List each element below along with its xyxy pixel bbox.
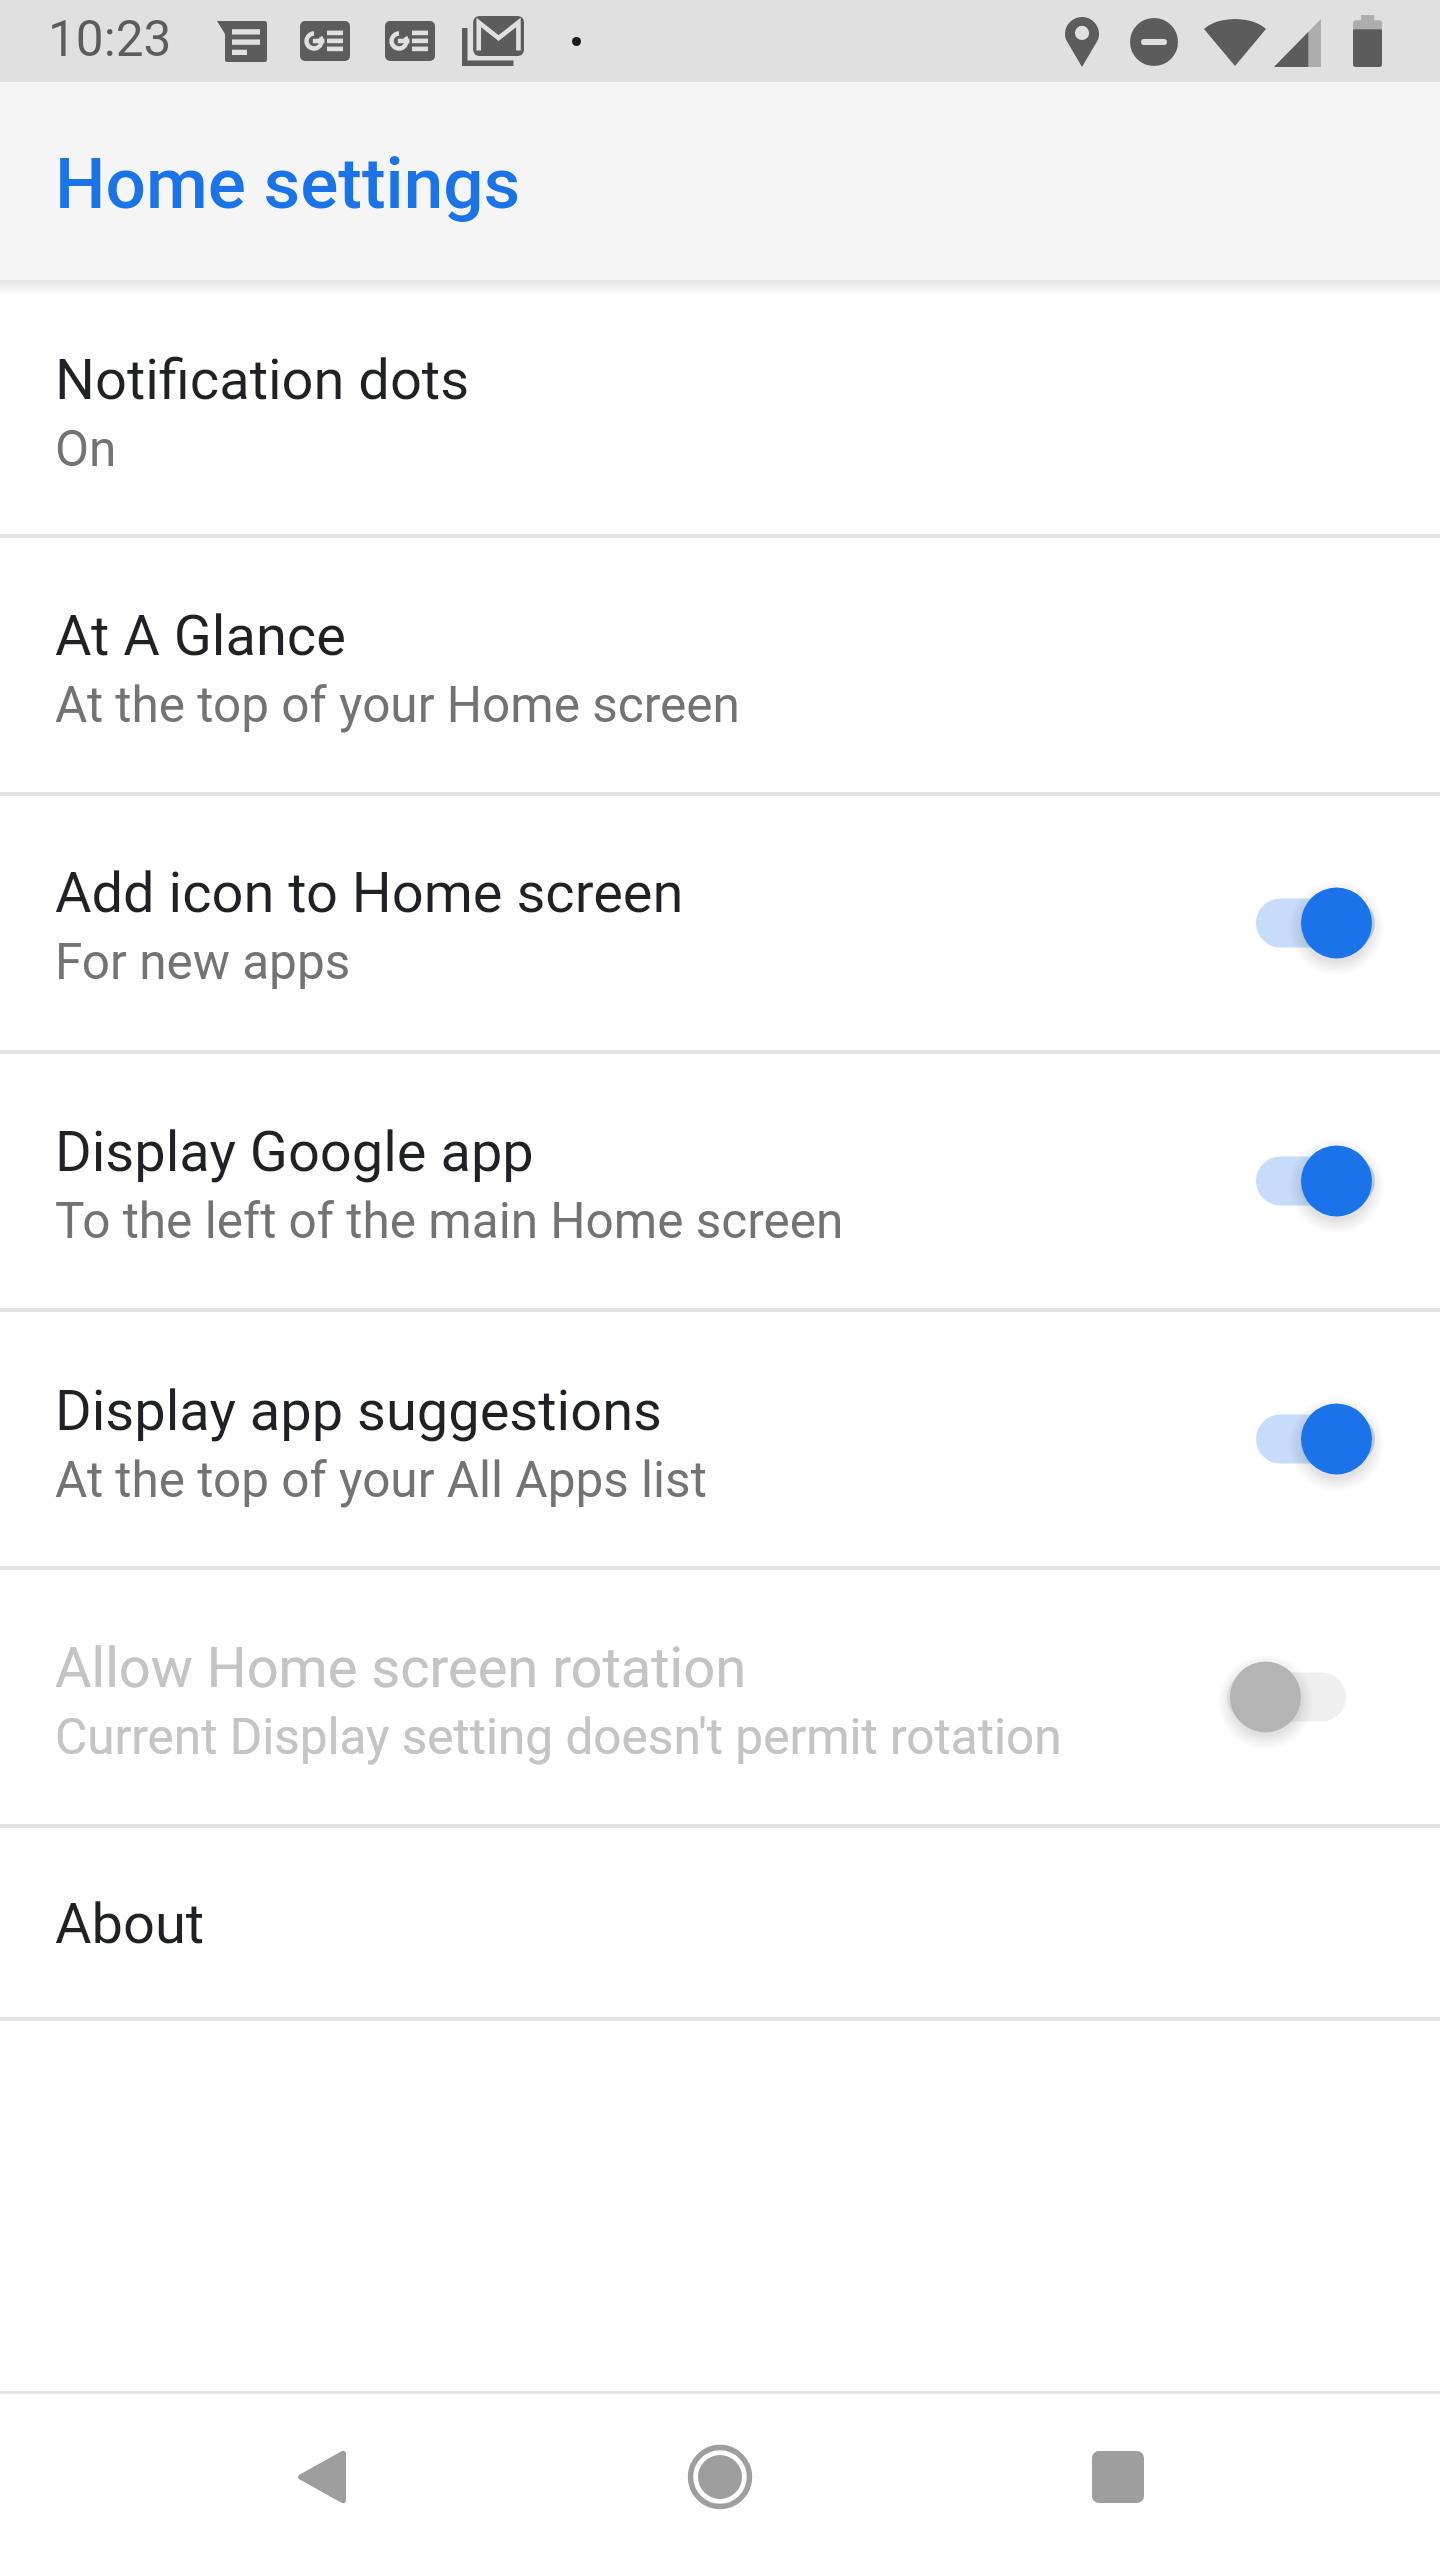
button[interactable]: Switch on [1256,1399,1375,1479]
staticText: Display app suggestions [55,1378,662,1444]
button[interactable]: Switch on [1256,883,1375,963]
staticText: At the top of your Home screen [55,676,740,734]
button[interactable]: About [0,1828,1440,2017]
button[interactable]: Switch on [1256,1141,1375,1221]
staticText: About [55,1891,205,1957]
button[interactable]: At A Glance [0,538,1440,792]
staticText: Notification dots [55,347,470,413]
button[interactable]: Switch off [1227,1657,1346,1737]
staticText: At the top of your All Apps list [55,1451,707,1509]
button[interactable]: Recent apps [1022,2394,1214,2560]
button[interactable]: Allow Home screen rotation [0,1570,1440,1824]
button[interactable]: Back [225,2394,417,2560]
staticText: At A Glance [55,603,346,669]
button[interactable]: Add icon to Home screen [0,796,1440,1050]
staticText: Home settings [55,142,521,225]
staticText: Allow Home screen rotation [55,1635,747,1701]
staticText: Display Google app [55,1119,534,1185]
staticText: Current Display setting doesn't permit r… [55,1708,1062,1766]
staticText: Add icon to Home screen [55,860,684,926]
button[interactable]: Display app suggestions [0,1312,1440,1566]
staticText: To the left of the main Home screen [55,1192,844,1250]
staticText: On [55,420,117,478]
staticText: For new apps [55,933,351,991]
button[interactable]: Notification dots [0,280,1440,534]
button[interactable]: Home [624,2394,816,2560]
button[interactable]: Display Google app [0,1054,1440,1308]
staticText: 10:23 [48,10,172,68]
